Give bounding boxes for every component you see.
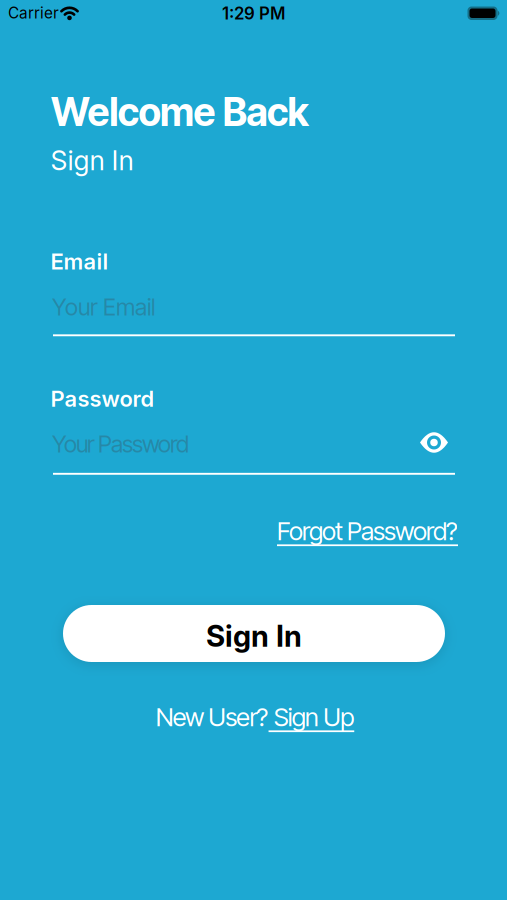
button[interactable]: Sign In [63,605,445,662]
staticText: Your Email [52,293,155,321]
staticText: Sign In [50,144,133,177]
staticText: Sign In [206,618,302,654]
button[interactable]: Show password [420,431,448,453]
button[interactable]: Forgot Password? [277,516,458,546]
staticText: Your Password [52,430,189,458]
staticText: 1:29 PM [222,3,285,24]
staticText: Welcome Back [51,89,309,135]
staticText: Email [50,248,108,275]
staticText: New User? [156,702,269,732]
staticText: Forgot Password? [277,516,458,546]
staticText: Password [50,385,154,412]
staticText: Sign Up [268,702,354,732]
button[interactable]: Sign Up [268,702,354,732]
staticText: Carrier [8,4,59,22]
